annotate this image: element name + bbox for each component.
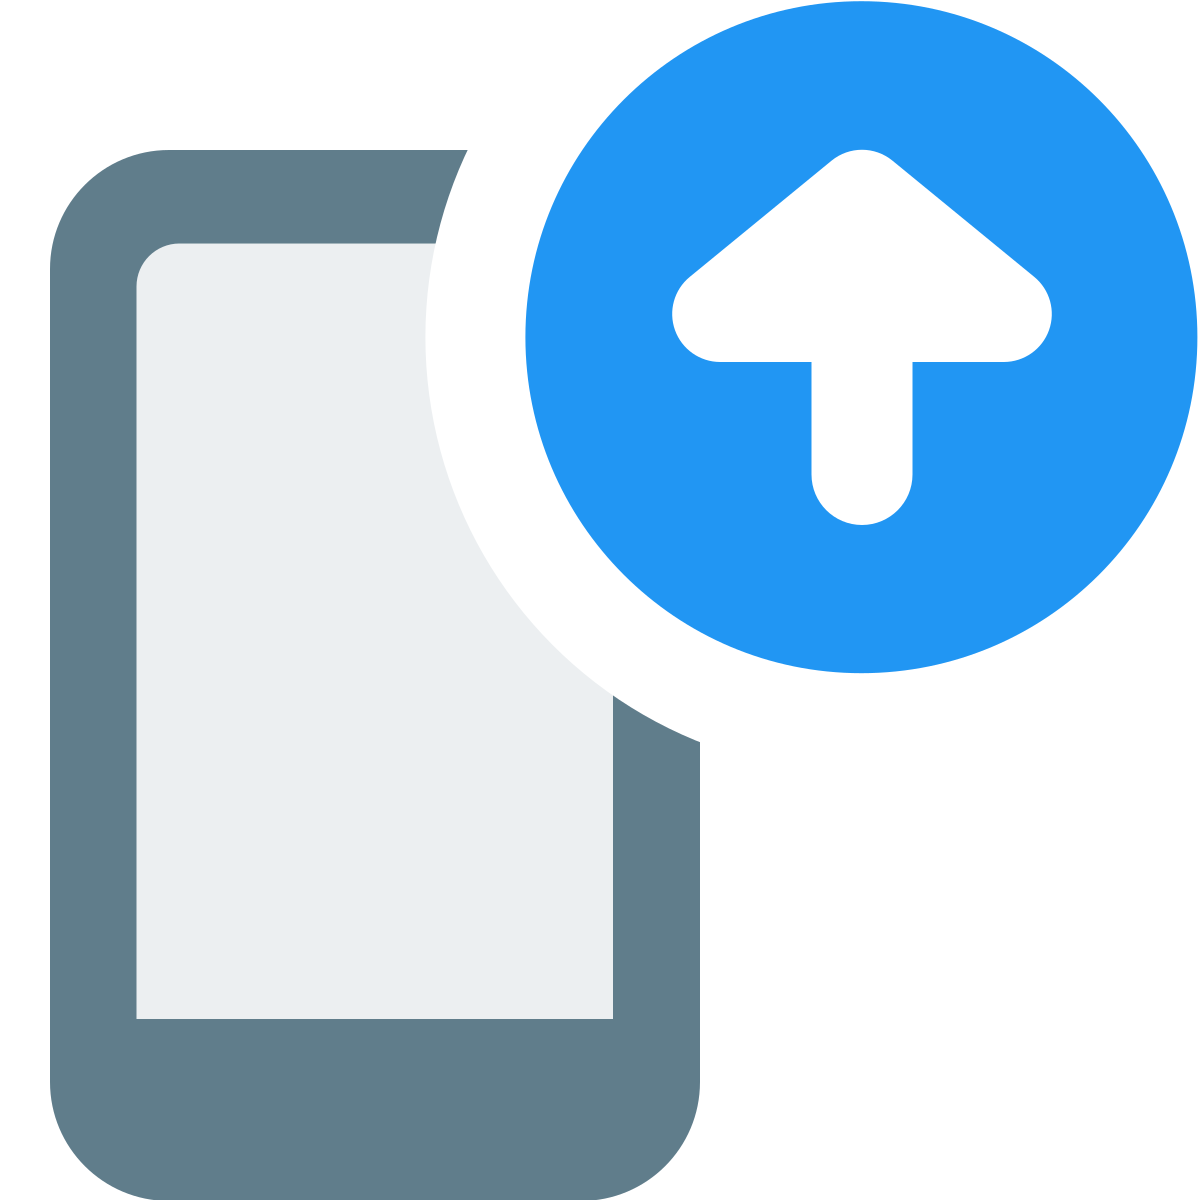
image: Phone software update available	[0, 0, 1200, 1200]
